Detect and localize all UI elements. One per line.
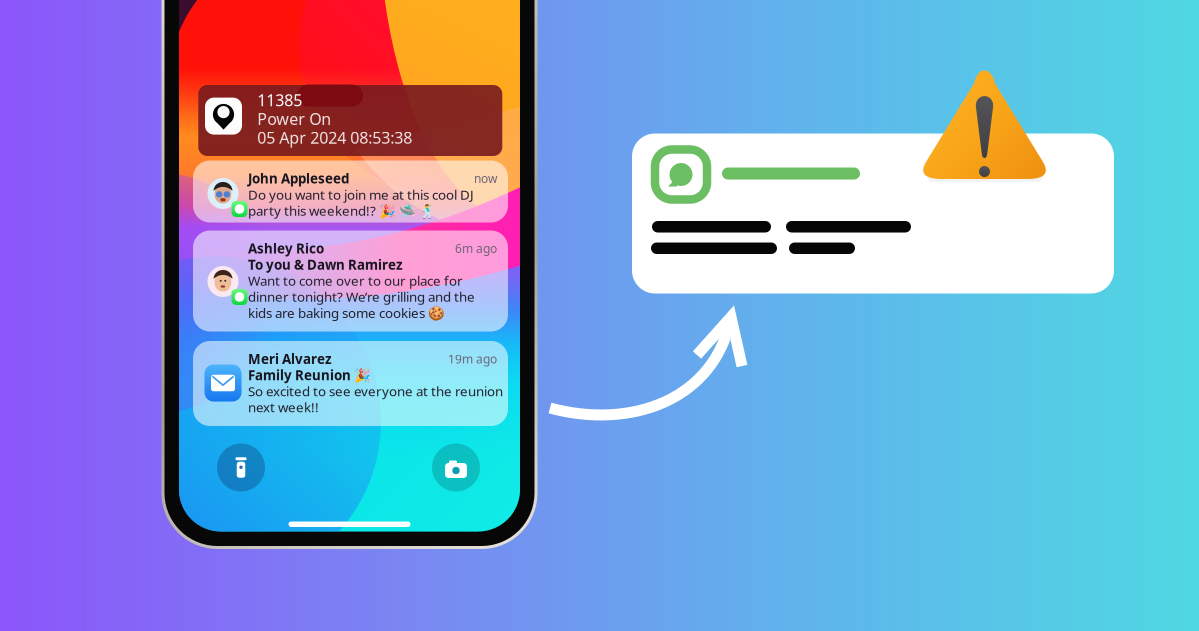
staticText: 11385 [257,89,302,111]
staticText: To you & Dawn Ramirez [248,256,403,273]
staticText: So excited to see everyone at the reunio… [248,382,503,400]
staticText: Want to come over to our place for [248,272,463,289]
button[interactable]: Ashley Rico [193,230,508,331]
staticText: Power On [257,108,331,129]
staticText: Meri Alvarez [248,350,332,368]
staticText: 19m ago [448,351,497,367]
staticText: kids are baking some cookies 🍪 [248,304,445,322]
staticText: John Appleseed [248,169,349,187]
button[interactable]: Meri Alvarez [193,341,508,426]
button[interactable]: Camera [432,443,480,491]
staticText: now [474,170,497,186]
staticText: party this weekend!? 🎉 🛸 🕺 [248,202,436,219]
staticText: Do you want to join me at this cool DJ [248,186,474,203]
button[interactable]: John Appleseed [193,160,508,222]
staticText: Family Reunion 🎉 [248,366,371,384]
staticText: 05 Apr 2024 08:53:38 [257,127,412,148]
button[interactable]: Flashlight [217,443,265,491]
staticText: dinner tonight? We’re grilling and the [248,288,475,305]
staticText: 6m ago [455,240,497,256]
button[interactable]: 11385 [198,85,502,156]
staticText: Ashley Rico [248,239,324,257]
staticText: next week!! [248,398,319,416]
